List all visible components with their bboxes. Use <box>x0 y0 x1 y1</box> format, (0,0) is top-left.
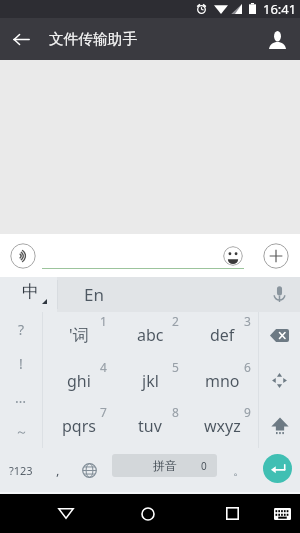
staticText: 1 <box>100 313 107 329</box>
button[interactable]: 中 <box>0 277 55 312</box>
staticText: , <box>56 461 60 479</box>
staticText: ～ <box>15 423 28 439</box>
staticText: jkl <box>142 370 159 392</box>
button[interactable]: En <box>58 277 258 312</box>
button[interactable]: 。 <box>221 448 257 492</box>
button[interactable]: Back <box>46 494 86 533</box>
button[interactable]: ? <box>0 312 42 346</box>
staticText: 6 <box>244 359 251 375</box>
staticText: 9 <box>244 404 251 420</box>
staticText: ? <box>18 320 25 339</box>
button[interactable]: Voice input <box>258 277 300 312</box>
staticText: abc <box>137 324 164 346</box>
button[interactable]: Switch keyboard <box>263 494 300 533</box>
staticText: 5 <box>172 359 179 375</box>
button[interactable]: ! <box>0 346 42 380</box>
staticText: 文件传输助手 <box>49 30 138 49</box>
button[interactable]: Back <box>0 18 42 60</box>
staticText: ghi <box>67 370 91 392</box>
button[interactable]: tuv <box>114 403 186 448</box>
staticText: 16:41 <box>263 0 297 18</box>
staticText: 8 <box>172 404 179 420</box>
button[interactable]: More options <box>263 243 289 269</box>
staticText: def <box>210 324 235 346</box>
staticText: tuv <box>138 415 162 437</box>
button[interactable]: Shift <box>259 403 300 448</box>
button[interactable]: wxyz <box>186 403 258 448</box>
button[interactable]: pqrs <box>43 403 114 448</box>
other: Cursor control <box>271 372 288 389</box>
staticText: mno <box>205 370 240 392</box>
staticText: 2 <box>172 313 179 329</box>
button[interactable]: Contact profile <box>256 19 298 61</box>
button[interactable]: Backspace <box>259 312 300 358</box>
staticText: 3 <box>244 313 251 329</box>
button[interactable]: abc <box>114 312 186 358</box>
button[interactable]: ～ <box>0 414 42 448</box>
other: Backspace <box>270 329 289 342</box>
staticText: '词 <box>69 324 89 346</box>
button[interactable]: Home <box>128 494 168 533</box>
staticText: ?123 <box>9 463 33 478</box>
staticText: … <box>15 388 27 407</box>
button[interactable]: def <box>186 312 258 358</box>
button[interactable]: , <box>44 448 72 492</box>
staticText: 0 <box>201 459 207 473</box>
button[interactable]: Recent apps <box>212 494 252 533</box>
staticText: ! <box>19 354 23 373</box>
button[interactable]: Emoji <box>223 246 243 266</box>
button[interactable]: ghi <box>43 358 114 403</box>
staticText: 中 <box>22 281 39 302</box>
staticText: wxyz <box>204 415 241 437</box>
staticText: 7 <box>100 404 107 420</box>
staticText: 4 <box>100 359 107 375</box>
button[interactable] <box>42 242 244 268</box>
button[interactable]: 拼音 <box>112 454 217 477</box>
other: Shift <box>271 416 289 436</box>
button[interactable]: Switch language <box>72 448 106 492</box>
button[interactable]: Cursor control <box>259 358 300 403</box>
button[interactable]: ?123 <box>0 448 42 492</box>
button[interactable]: jkl <box>114 358 186 403</box>
staticText: 拼音 <box>153 458 177 473</box>
button[interactable]: Voice message <box>10 243 36 269</box>
button[interactable]: … <box>0 380 42 414</box>
staticText: En <box>84 283 104 306</box>
staticText: pqrs <box>62 415 96 437</box>
button[interactable]: mno <box>186 358 258 403</box>
button[interactable]: Enter <box>263 454 292 483</box>
staticText: 。 <box>233 463 245 478</box>
button[interactable]: '词 <box>43 312 114 358</box>
